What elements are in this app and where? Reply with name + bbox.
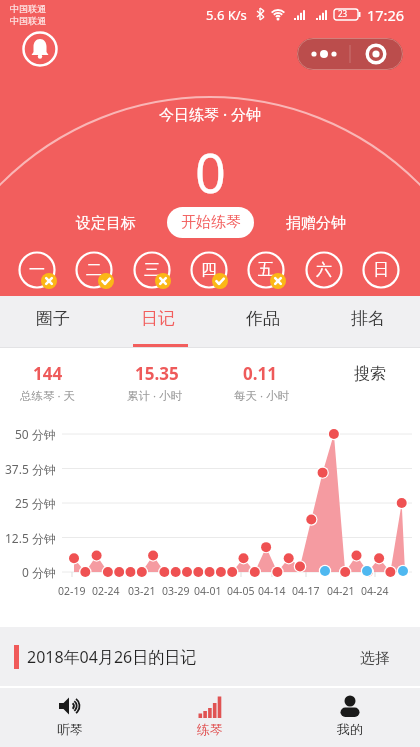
button[interactable]: 搜索 [330, 364, 410, 384]
staticText: 02-24 [92, 584, 120, 598]
staticText: 圈子 [36, 308, 70, 329]
staticText: 今日练琴 · 分钟 [159, 104, 261, 124]
staticText: 三 [144, 260, 160, 280]
staticText: 开始练琴 [181, 213, 241, 232]
staticText: 144 [33, 362, 63, 385]
staticText: 23 [338, 8, 348, 19]
button[interactable]: 选择 [350, 639, 400, 677]
staticText: 设定目标 [76, 214, 136, 233]
staticText: 02-19 [58, 584, 86, 598]
staticText: 2018年04月26日的日记 [27, 646, 197, 668]
staticText: 12.5 分钟 [5, 530, 56, 546]
staticText: 04-24 [361, 584, 389, 598]
staticText: 04-01 [194, 584, 222, 598]
button[interactable]: 捐赠分钟 [261, 214, 371, 233]
button[interactable]: 作品 [210, 308, 315, 329]
staticText: 03-21 [128, 584, 156, 598]
staticText: 作品 [246, 308, 280, 329]
button[interactable]: 我的 [310, 691, 390, 747]
staticText: 我的 [337, 721, 363, 737]
button[interactable] [297, 38, 403, 70]
staticText: 04-14 [258, 584, 286, 598]
button[interactable]: 设定目标 [51, 214, 161, 233]
button[interactable]: 日记 [105, 308, 210, 329]
button[interactable]: 四 [190, 251, 228, 289]
button[interactable]: 练琴 [170, 691, 250, 747]
staticText: 六 [316, 260, 332, 280]
staticText: 50 分钟 [15, 426, 56, 442]
staticText: 中国联通 [10, 3, 46, 14]
button[interactable]: 六 [305, 251, 343, 289]
staticText: 中国联通 [10, 15, 46, 26]
button[interactable]: 2018年04月26日的日记 [0, 627, 420, 686]
staticText: 二 [86, 260, 102, 280]
button[interactable]: 二 [75, 251, 113, 289]
button[interactable]: 日 [362, 251, 400, 289]
staticText: 每天 · 小时 [234, 388, 290, 404]
staticText: 日 [373, 260, 389, 280]
staticText: 捐赠分钟 [286, 214, 346, 233]
button[interactable]: 开始练琴 [167, 207, 254, 238]
staticText: 五 [258, 260, 274, 280]
staticText: 5.6 K/s [206, 6, 247, 24]
staticText: 累计 · 小时 [127, 388, 183, 404]
staticText: 25 分钟 [15, 495, 56, 511]
staticText: 总练琴 · 天 [20, 388, 76, 404]
button[interactable]: 圈子 [0, 308, 105, 329]
button[interactable]: 三 [133, 251, 171, 289]
staticText: 排名 [351, 308, 385, 329]
button[interactable]: 听琴 [30, 691, 110, 747]
staticText: 0.11 [243, 362, 277, 385]
button[interactable]: 排名 [315, 308, 420, 329]
button[interactable] [22, 31, 58, 67]
staticText: 04-21 [327, 584, 355, 598]
staticText: 15.35 [135, 362, 179, 385]
staticText: 一 [29, 260, 45, 280]
staticText: 03-29 [162, 584, 190, 598]
staticText: 0 分钟 [22, 564, 56, 580]
staticText: 听琴 [57, 721, 83, 737]
button[interactable]: 一 [18, 251, 56, 289]
button[interactable]: 五 [247, 251, 285, 289]
staticText: 搜索 [354, 364, 386, 384]
staticText: 日记 [141, 308, 175, 329]
staticText: 04-17 [292, 584, 320, 598]
staticText: 选择 [360, 649, 390, 668]
staticText: 四 [201, 260, 217, 280]
staticText: 04-05 [227, 584, 255, 598]
staticText: 练琴 [197, 721, 223, 737]
staticText: 0 [195, 135, 226, 209]
staticText: 37.5 分钟 [5, 461, 56, 477]
staticText: 17:26 [367, 5, 405, 25]
